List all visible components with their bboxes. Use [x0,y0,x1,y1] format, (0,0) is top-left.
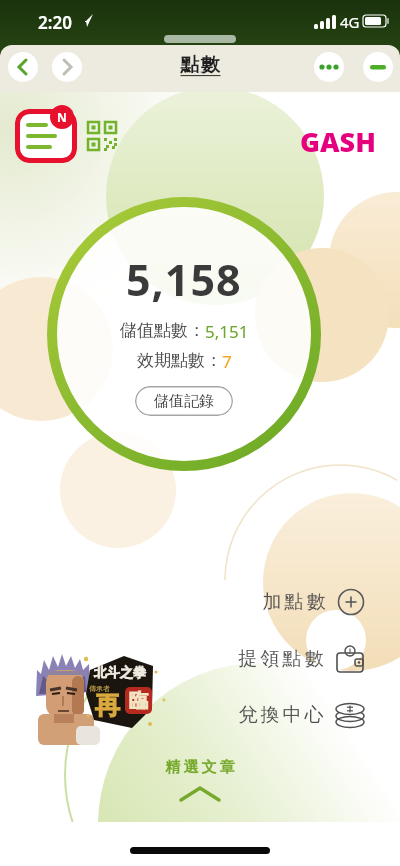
staticText: 點數 [180,53,220,77]
staticText: 臨 [129,689,148,713]
staticText: 北斗之拳 [94,664,146,680]
staticText: 傳承者 [89,684,110,693]
staticText: 精選文章 [164,758,236,777]
button[interactable] [314,52,344,82]
button[interactable] [52,52,82,82]
staticText: 5,158 [126,250,242,309]
staticText: 儲值記錄 [154,392,214,411]
staticText: 儲值點數： [120,320,205,341]
button[interactable]: 加點數 [230,587,365,617]
button[interactable]: 北斗之拳 [28,650,172,745]
button[interactable] [363,52,393,82]
button[interactable] [8,52,38,82]
staticText: GASH [300,123,376,160]
staticText: 加點數 [261,590,327,614]
staticText: 兌換中心 [237,703,325,727]
staticText: 2:20 [38,11,72,34]
staticText: 7 [222,350,232,373]
button[interactable] [87,121,117,151]
button[interactable]: 精選文章 [130,758,270,814]
staticText: 4G [340,12,360,32]
button[interactable] [15,109,77,163]
staticText: 5,151 [205,320,249,343]
staticText: 再 [95,690,120,721]
button[interactable]: 兌換中心 [230,700,365,730]
staticText: 效期點數： [137,350,222,371]
button[interactable]: 提領點數 [230,644,365,674]
staticText: N [57,109,67,125]
button[interactable]: 儲值記錄 [135,386,233,416]
staticText: 提領點數 [237,647,325,671]
